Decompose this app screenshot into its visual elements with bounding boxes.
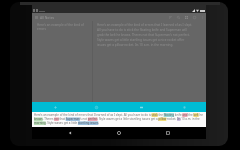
- staticText: Here's an example of the kind of errors: [37, 23, 92, 31]
- button[interactable]: Menu: [35, 13, 55, 21]
- button[interactable]: Check: [92, 102, 100, 112]
- staticText: All Notes: [40, 15, 55, 20]
- button[interactable]: Share: [137, 102, 145, 112]
- staticText: Here's an example of the kind of errors …: [34, 113, 204, 125]
- staticText: Here's an example of the kind of errors …: [97, 23, 193, 47]
- button[interactable]: Search: [176, 13, 181, 21]
- button[interactable]: Back: [59, 127, 81, 139]
- button[interactable]: Add note: [51, 102, 59, 112]
- button[interactable]: Grid view: [184, 13, 189, 21]
- button[interactable]: Recent apps: [157, 127, 179, 139]
- button[interactable]: Settings: [180, 102, 188, 112]
- button[interactable]: Sort: [168, 13, 173, 21]
- button[interactable]: Refresh: [192, 13, 197, 21]
- button[interactable]: Home: [108, 127, 130, 139]
